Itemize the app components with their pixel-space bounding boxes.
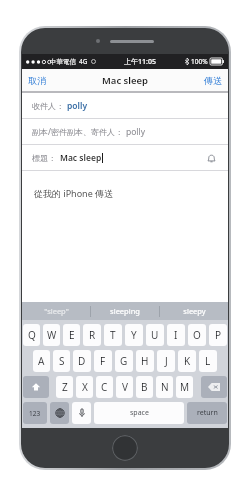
button[interactable]: F <box>94 350 112 372</box>
staticText: B <box>141 380 148 394</box>
staticText: Mac sleep <box>102 74 149 87</box>
button[interactable]: A <box>33 350 50 372</box>
staticText: 傳送 <box>204 75 222 86</box>
staticText: 收件人： <box>32 101 64 111</box>
button[interactable]: space <box>94 402 184 424</box>
staticText: 4G <box>79 57 88 66</box>
button[interactable]: S <box>53 350 70 372</box>
button[interactable]: sleeping <box>91 302 159 320</box>
button[interactable]: Z <box>56 376 73 398</box>
staticText: S <box>59 354 65 368</box>
button[interactable]: B <box>136 376 153 398</box>
button[interactable]: U <box>146 324 164 346</box>
staticText: K <box>184 354 191 368</box>
staticText: 100% <box>191 57 208 66</box>
staticText: F <box>100 354 106 368</box>
staticText: 上午11:05 <box>124 57 156 67</box>
staticText: L <box>205 354 211 368</box>
button[interactable]: Y <box>125 324 143 346</box>
button[interactable]: K <box>178 350 196 372</box>
button[interactable]: J <box>157 350 175 372</box>
staticText: polly <box>126 126 146 138</box>
button[interactable]: G <box>115 350 133 372</box>
button[interactable]: V <box>116 376 133 398</box>
button[interactable]: L <box>199 350 217 372</box>
button[interactable]: sleepy <box>160 302 228 320</box>
staticText: 副本/密件副本、寄件人： <box>32 126 123 137</box>
staticText: J <box>165 354 168 368</box>
button[interactable]: Backspace <box>201 376 227 398</box>
staticText: P <box>215 328 222 342</box>
button[interactable]: H <box>136 350 154 372</box>
staticText: T <box>110 328 116 342</box>
button[interactable]: 副本/密件副本、寄件人： <box>22 119 228 144</box>
button[interactable]: 123 <box>23 402 47 424</box>
staticText: A <box>38 354 45 368</box>
button[interactable]: "sleep" <box>22 302 90 320</box>
staticText: 123 <box>29 409 41 418</box>
staticText: G <box>120 354 128 368</box>
staticText: V <box>122 380 128 394</box>
staticText: C <box>101 380 108 394</box>
button[interactable]: W <box>43 324 60 346</box>
button[interactable]: N <box>156 376 173 398</box>
staticText: sleeping <box>110 306 140 316</box>
button[interactable]: R <box>83 324 101 346</box>
staticText: Z <box>62 380 68 394</box>
staticText: N <box>161 380 169 394</box>
staticText: D <box>78 354 86 368</box>
staticText: space <box>130 408 149 418</box>
staticText: R <box>89 328 96 342</box>
button[interactable]: 傳送 <box>198 69 228 91</box>
staticText: 中華電信 <box>50 58 76 66</box>
button[interactable]: Q <box>23 324 40 346</box>
staticText: O <box>193 328 201 342</box>
button[interactable]: 收件人： <box>22 93 228 118</box>
button[interactable]: I <box>167 324 185 346</box>
button[interactable]: M <box>176 376 193 398</box>
button[interactable]: Shift <box>23 376 49 398</box>
staticText: Q <box>28 328 36 342</box>
button[interactable]: T <box>104 324 122 346</box>
staticText: 取消 <box>28 75 46 86</box>
button[interactable]: Notify me <box>203 150 219 166</box>
button[interactable]: 標題： <box>22 145 228 170</box>
staticText: sleepy <box>183 306 206 316</box>
staticText: return <box>197 408 218 418</box>
staticText: U <box>151 328 159 342</box>
staticText: W <box>47 328 57 342</box>
staticText: X <box>82 380 88 394</box>
staticText: "sleep" <box>44 306 69 316</box>
staticText: I <box>174 328 178 342</box>
button[interactable]: E <box>63 324 80 346</box>
button[interactable]: Home <box>112 435 138 461</box>
button[interactable]: return <box>187 402 227 424</box>
staticText: 從我的 iPhone 傳送 <box>34 187 114 199</box>
staticText: Y <box>131 328 137 342</box>
staticText: E <box>69 328 75 342</box>
staticText: M <box>180 380 190 394</box>
button[interactable]: D <box>73 350 91 372</box>
button[interactable]: Change keyboard <box>50 402 69 424</box>
staticText: polly <box>67 100 88 112</box>
button[interactable]: P <box>209 324 227 346</box>
button[interactable]: X <box>76 376 93 398</box>
staticText: 標題： <box>32 153 56 163</box>
button[interactable]: 取消 <box>22 69 52 91</box>
button[interactable]: C <box>96 376 113 398</box>
staticText: Mac sleep <box>60 152 102 164</box>
button[interactable]: O <box>188 324 206 346</box>
button[interactable]: Dictation <box>72 402 91 424</box>
staticText: H <box>141 354 149 368</box>
